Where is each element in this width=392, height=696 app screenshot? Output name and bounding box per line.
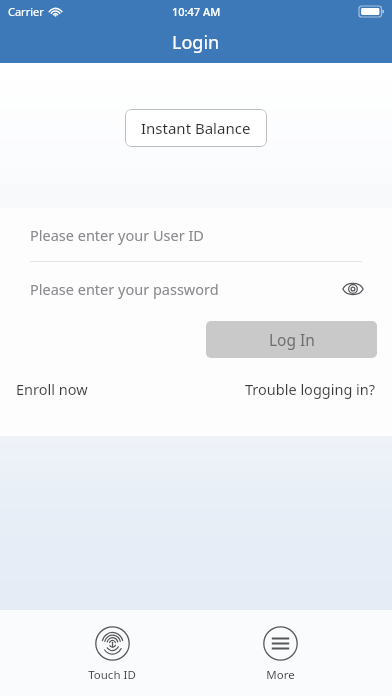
button[interactable]: Show password [338, 274, 368, 304]
button[interactable]: Instant Balance [125, 109, 267, 147]
staticText: Please enter your User ID [30, 225, 204, 245]
staticText: More [266, 667, 295, 683]
staticText: Login [172, 30, 220, 55]
staticText: Instant Balance [141, 118, 251, 138]
button[interactable]: Trouble logging in? [237, 374, 384, 404]
button[interactable]: Log In [206, 321, 377, 358]
button[interactable]: Touch ID [57, 610, 167, 691]
staticText: Please enter your password [30, 279, 219, 299]
staticText: Touch ID [88, 667, 136, 683]
button[interactable]: Please enter your password [0, 262, 392, 315]
staticText: Enroll now [16, 379, 88, 399]
button[interactable]: Enroll now [8, 374, 96, 404]
staticText: Carrier [8, 4, 44, 19]
staticText: 10:47 AM [172, 4, 221, 19]
button[interactable]: Please enter your User ID [0, 208, 392, 261]
button[interactable]: More [225, 610, 335, 691]
staticText: Trouble logging in? [245, 379, 376, 399]
staticText: Log In [269, 329, 315, 350]
